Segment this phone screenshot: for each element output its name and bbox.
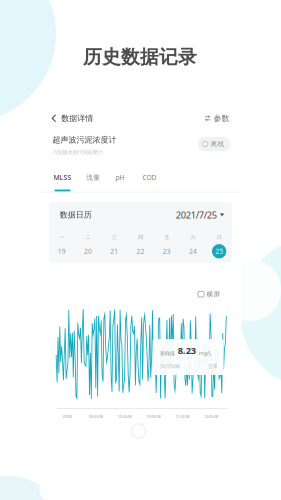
staticText: 20 bbox=[84, 247, 92, 256]
staticText: 四 bbox=[138, 234, 143, 241]
button[interactable]: MLSS bbox=[49, 170, 75, 192]
staticText: 12:05:08 bbox=[204, 414, 218, 419]
staticText: 离线 bbox=[210, 140, 224, 148]
staticText: 19 bbox=[58, 247, 66, 256]
button[interactable]: 离线 bbox=[198, 137, 230, 151]
staticText: 22 bbox=[136, 247, 144, 256]
button[interactable]: 20 bbox=[75, 244, 101, 258]
button[interactable]: 流量 bbox=[80, 170, 106, 192]
staticText: 二 bbox=[86, 234, 91, 241]
staticText: 数据日历 bbox=[60, 210, 92, 220]
button[interactable]: 24 bbox=[180, 244, 206, 258]
staticText: 历史数据记录 bbox=[83, 45, 197, 68]
staticText: 超声波污泥浓度计 bbox=[52, 135, 116, 145]
button[interactable]: 25 bbox=[206, 244, 232, 258]
staticText: 采样值 bbox=[160, 350, 175, 357]
staticText: 11:32:08 bbox=[175, 414, 189, 419]
staticText: 三 bbox=[112, 234, 117, 241]
button[interactable]: 参数 bbox=[205, 109, 241, 127]
staticText: 数据详情 bbox=[61, 113, 93, 123]
staticText: 8.23 bbox=[178, 344, 196, 357]
button[interactable]: 19 bbox=[49, 244, 75, 258]
staticText: 参数 bbox=[213, 113, 229, 123]
staticText: 横屏 bbox=[206, 290, 220, 298]
staticText: 09:53:08 bbox=[89, 414, 103, 419]
staticText: 六 bbox=[190, 234, 195, 241]
staticText: 10:55:06 bbox=[160, 363, 180, 370]
button[interactable]: 21 bbox=[101, 244, 127, 258]
staticText: 日 bbox=[217, 234, 222, 241]
button[interactable]: pH bbox=[107, 170, 133, 192]
staticText: 20:08 bbox=[62, 414, 71, 419]
button[interactable]: 22 bbox=[127, 244, 154, 258]
staticText: mg/L bbox=[199, 350, 212, 357]
button[interactable]: 数据详情 bbox=[39, 109, 93, 127]
staticText: 23 bbox=[163, 247, 171, 256]
button[interactable]: COD bbox=[137, 170, 163, 192]
staticText: 流量 bbox=[86, 173, 100, 182]
staticText: pH bbox=[115, 173, 124, 182]
staticText: MLSS bbox=[53, 173, 71, 182]
staticText: 21 bbox=[110, 247, 118, 256]
staticText: 一 bbox=[59, 234, 64, 241]
staticText: 24 bbox=[189, 247, 197, 256]
button[interactable]: 2021/7/25 bbox=[176, 209, 224, 221]
button[interactable]: 横屏 bbox=[198, 287, 220, 301]
staticText: 2021/7/25 bbox=[176, 209, 217, 221]
staticText: COD bbox=[143, 173, 157, 182]
staticText: 正常 bbox=[208, 363, 218, 369]
staticText: 五 bbox=[164, 234, 169, 241]
staticText: 10:26:08 bbox=[118, 414, 132, 419]
staticText: 25 bbox=[215, 247, 223, 256]
staticText: 污泥脱水间污泥浓度计 bbox=[52, 149, 102, 155]
staticText: 10:59:08 bbox=[146, 414, 160, 419]
button[interactable]: 23 bbox=[154, 244, 180, 258]
